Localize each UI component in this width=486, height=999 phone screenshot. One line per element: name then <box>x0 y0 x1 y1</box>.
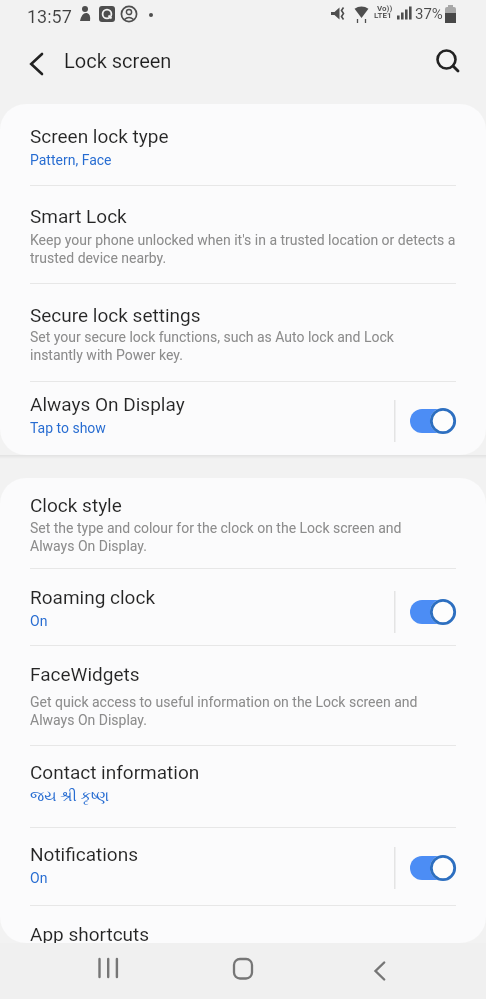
staticText: LTE1 <box>374 11 392 20</box>
staticText: Get quick access to useful information o… <box>30 694 418 729</box>
staticText: Lock screen <box>64 49 172 72</box>
button[interactable]: Smart Lock <box>0 186 486 283</box>
staticText: Notifications <box>30 843 139 865</box>
button[interactable]: Secure lock settings <box>0 284 486 381</box>
staticText: Smart Lock <box>30 205 127 227</box>
staticText: On <box>30 870 48 886</box>
staticText: FaceWidgets <box>30 663 140 685</box>
staticText: Keep your phone unlocked when it's in a … <box>30 232 456 267</box>
staticText: Secure lock settings <box>30 304 201 326</box>
button[interactable] <box>360 951 400 991</box>
staticText: Tap to show <box>30 420 106 436</box>
staticText: On <box>30 613 48 629</box>
staticText: Contact information <box>30 761 200 783</box>
button[interactable]: Notifications <box>0 828 486 905</box>
staticText: Vo)) <box>377 4 393 13</box>
button[interactable] <box>428 41 468 81</box>
button[interactable]: App shortcuts <box>0 906 486 943</box>
button[interactable]: Contact information <box>0 746 486 827</box>
button[interactable] <box>24 50 52 86</box>
staticText: જય શ્રી કૃષ્ણ <box>30 787 110 805</box>
button[interactable] <box>223 951 263 991</box>
staticText: Set the type and colour for the clock on… <box>30 520 402 555</box>
button[interactable]: Always On Display <box>0 382 486 455</box>
button[interactable]: Roaming clock <box>0 569 486 645</box>
button[interactable]: FaceWidgets <box>0 646 486 745</box>
staticText: App shortcuts <box>30 923 150 943</box>
staticText: Always On Display <box>30 393 185 415</box>
staticText: Roaming clock <box>30 586 156 608</box>
staticText: Pattern, Face <box>30 152 112 168</box>
staticText: 13:57 <box>27 6 72 27</box>
staticText: Clock style <box>30 494 122 516</box>
button[interactable] <box>87 951 127 991</box>
staticText: 37% <box>415 5 443 23</box>
button[interactable]: Screen lock type <box>0 104 486 185</box>
staticText: Set your secure lock functions, such as … <box>30 329 394 364</box>
staticText: Screen lock type <box>30 125 169 147</box>
button[interactable]: Clock style <box>0 478 486 568</box>
